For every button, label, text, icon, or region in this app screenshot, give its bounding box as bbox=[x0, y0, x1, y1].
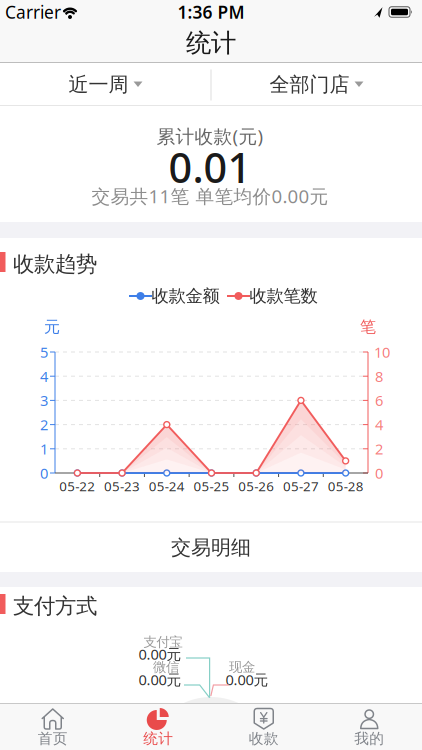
button[interactable]: 统计 bbox=[113, 704, 203, 750]
staticText: 1:36 PM bbox=[177, 0, 244, 23]
staticText: 现金 bbox=[229, 659, 255, 675]
staticText: 我的 bbox=[354, 729, 384, 747]
staticText: 05-26 bbox=[238, 477, 274, 495]
staticText: 收款笔数 bbox=[249, 285, 317, 307]
button[interactable]: 收款 bbox=[219, 704, 309, 750]
staticText: 0 bbox=[375, 463, 383, 483]
staticText: 收款金额 bbox=[151, 285, 219, 307]
staticText: 0.01 bbox=[168, 140, 251, 194]
staticText: 8 bbox=[375, 366, 383, 386]
staticText: 05-25 bbox=[193, 477, 229, 495]
button[interactable]: 全部门店 bbox=[211, 63, 421, 105]
staticText: 05-24 bbox=[149, 477, 185, 495]
staticText: 1 bbox=[40, 439, 48, 459]
staticText: 0.00元 bbox=[138, 670, 181, 689]
staticText: Carrier bbox=[5, 0, 61, 23]
staticText: 笔 bbox=[360, 317, 376, 337]
staticText: 2 bbox=[40, 415, 48, 434]
staticText: 累计收款(元) bbox=[156, 124, 263, 148]
staticText: 全部门店 bbox=[269, 72, 349, 97]
staticText: 5 bbox=[40, 342, 48, 362]
staticText: 支付宝 bbox=[143, 634, 182, 650]
staticText: 交易共11笔 单笔均价0.00元 bbox=[91, 184, 328, 208]
staticText: 05-22 bbox=[59, 477, 95, 495]
staticText: 支付方式 bbox=[13, 593, 97, 619]
staticText: 6 bbox=[375, 391, 383, 410]
staticText: 0.00元 bbox=[138, 644, 181, 664]
staticText: 微信 bbox=[153, 659, 179, 675]
staticText: 收款 bbox=[249, 729, 279, 747]
staticText: 0.00元 bbox=[225, 670, 268, 689]
button[interactable]: 交易明细 bbox=[0, 523, 422, 572]
staticText: 近一周 bbox=[68, 72, 128, 97]
staticText: 交易明细 bbox=[171, 535, 251, 560]
staticText: 2 bbox=[375, 439, 383, 459]
button[interactable]: 首页 bbox=[8, 704, 98, 750]
button[interactable]: 我的 bbox=[324, 704, 414, 750]
staticText: 4 bbox=[375, 415, 383, 434]
staticText: 05-23 bbox=[104, 477, 140, 495]
staticText: 收款趋势 bbox=[13, 251, 97, 277]
staticText: 0 bbox=[40, 463, 48, 483]
staticText: 首页 bbox=[38, 729, 68, 747]
staticText: 05-27 bbox=[283, 477, 319, 495]
staticText: 05-28 bbox=[328, 477, 364, 495]
staticText: 统计 bbox=[186, 27, 236, 58]
staticText: 统计 bbox=[143, 729, 173, 747]
staticText: 3 bbox=[40, 391, 48, 410]
staticText: 4 bbox=[40, 366, 48, 386]
button[interactable]: 近一周 bbox=[0, 63, 210, 105]
staticText: 10 bbox=[374, 342, 390, 362]
staticText: 元 bbox=[44, 317, 60, 337]
